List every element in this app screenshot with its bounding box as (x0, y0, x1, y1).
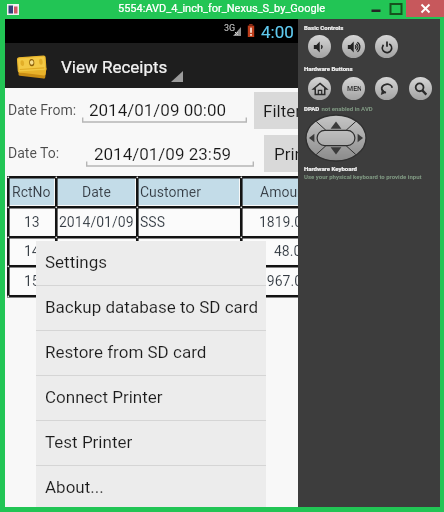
button[interactable]: Power (375, 35, 398, 58)
button[interactable]: Close (406, 0, 444, 17)
button[interactable]: Backup database to SD card (36, 286, 266, 331)
staticText: Customer (140, 184, 201, 200)
button[interactable]: 14 (9, 238, 54, 264)
button[interactable]: Maximize (386, 1, 406, 17)
staticText: 5554:AVD_4_inch_for_Nexus_S_by_Google (118, 2, 326, 15)
staticText: 2014/01/09 23:59 (94, 144, 232, 164)
staticText: Hardware Buttons (304, 65, 353, 72)
staticText: 1819.00 (259, 214, 310, 230)
button[interactable]: 2014/01/09 (57, 208, 135, 235)
button[interactable]: 2014/01/09 (57, 267, 135, 294)
button[interactable]: Search (409, 77, 432, 100)
button[interactable]: Amount (242, 178, 312, 205)
staticText: Date To: (8, 145, 60, 161)
staticText: 15 (24, 273, 40, 289)
staticText: Connect Printer (45, 387, 163, 407)
button[interactable]: Customer (138, 178, 239, 205)
staticText: MENU (347, 85, 361, 93)
staticText: Backup database to SD card (45, 297, 259, 317)
button[interactable]: 15 (9, 267, 54, 294)
staticText: About... (45, 477, 104, 497)
button[interactable]: RctNo (9, 178, 54, 205)
button[interactable]: Menu (342, 77, 365, 100)
staticText: View Receipts (61, 57, 168, 77)
staticText: not enabled in AVD (320, 105, 373, 112)
button[interactable]: 2014/01/09 00:00 (82, 97, 247, 123)
button[interactable]: Date (57, 178, 135, 205)
staticText: Print (274, 144, 310, 164)
staticText: 2014/01/09 (59, 243, 133, 259)
staticText: Test Printer (45, 432, 133, 452)
staticText: Filter (263, 101, 302, 121)
button[interactable]: 13 (9, 208, 54, 235)
staticText: 4:00 (261, 22, 294, 42)
staticText: 2014/01/09 (59, 214, 133, 230)
staticText: Amount (260, 184, 310, 200)
staticText: 13 (24, 214, 40, 230)
staticText: Hardware Keyboard (304, 165, 357, 172)
button[interactable]: Test Printer (36, 421, 266, 466)
staticText: 14 (24, 243, 40, 259)
staticText: Restore from SD card (45, 342, 207, 362)
staticText: SSS (140, 214, 165, 230)
button[interactable]: 1819.00 (242, 208, 312, 235)
button[interactable]: 2014/01/09 23:59 (86, 141, 254, 167)
staticText: Date (82, 184, 111, 200)
staticText: Date From: (8, 102, 77, 118)
staticText: Basic Controls (304, 24, 344, 31)
button[interactable]: About... (36, 466, 266, 511)
button[interactable]: Back (375, 77, 398, 100)
button[interactable]: Restore from SD card (36, 331, 266, 376)
button[interactable]: Connect Printer (36, 376, 266, 421)
staticText: 3967.00 (259, 273, 310, 289)
other: D-pad (306, 115, 366, 161)
staticText: RctNo (12, 184, 51, 200)
button[interactable]: Home (308, 77, 331, 100)
button[interactable]: Minimize (366, 1, 386, 17)
staticText: 2014/01/09 (59, 273, 133, 289)
staticText: Use your physical keyboard to provide in… (304, 173, 422, 180)
button[interactable]: Print (264, 135, 320, 172)
button[interactable]: 2014/01/09 (57, 238, 135, 264)
button[interactable]: Settings (36, 241, 266, 286)
button[interactable]: TTT (138, 238, 239, 264)
button[interactable]: UUU (138, 267, 239, 294)
staticText: Settings (45, 252, 108, 272)
button[interactable]: 48.00 (242, 238, 312, 264)
button[interactable]: Volume down (308, 35, 331, 58)
staticText: 3G (224, 23, 236, 34)
button[interactable]: More options (169, 66, 189, 88)
staticText: 2014/01/09 00:00 (89, 100, 227, 120)
staticText: 48.00 (274, 243, 310, 259)
button[interactable]: Volume up (342, 35, 365, 58)
button[interactable]: Filter (254, 92, 310, 129)
staticText: UUU (140, 273, 168, 289)
button[interactable]: 3967.00 (242, 267, 312, 294)
button[interactable]: SSS (138, 208, 239, 235)
staticText: DPAD (304, 105, 320, 112)
